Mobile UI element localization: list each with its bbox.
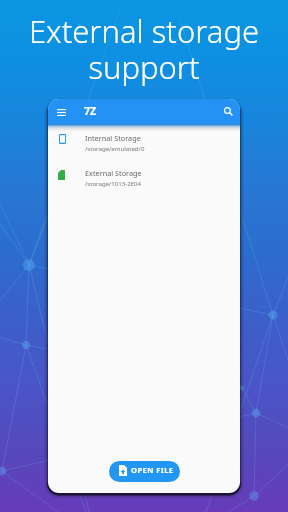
button[interactable]: OPEN FILE (109, 461, 180, 482)
button[interactable]: Open navigation menu (52, 103, 70, 121)
button[interactable]: Internal Storage (48, 126, 240, 161)
button[interactable]: External Storage (48, 161, 240, 196)
staticText: 7Z (84, 104, 97, 118)
staticText: /storage/emulated/0 (85, 144, 145, 152)
staticText: External storage support (0, 10, 288, 88)
staticText: External Storage (85, 168, 142, 178)
staticText: Internal Storage (85, 133, 141, 143)
staticText: OPEN FILE (131, 465, 174, 475)
button[interactable]: Search (219, 102, 237, 120)
staticText: /storage/1013-2E04 (85, 179, 142, 187)
